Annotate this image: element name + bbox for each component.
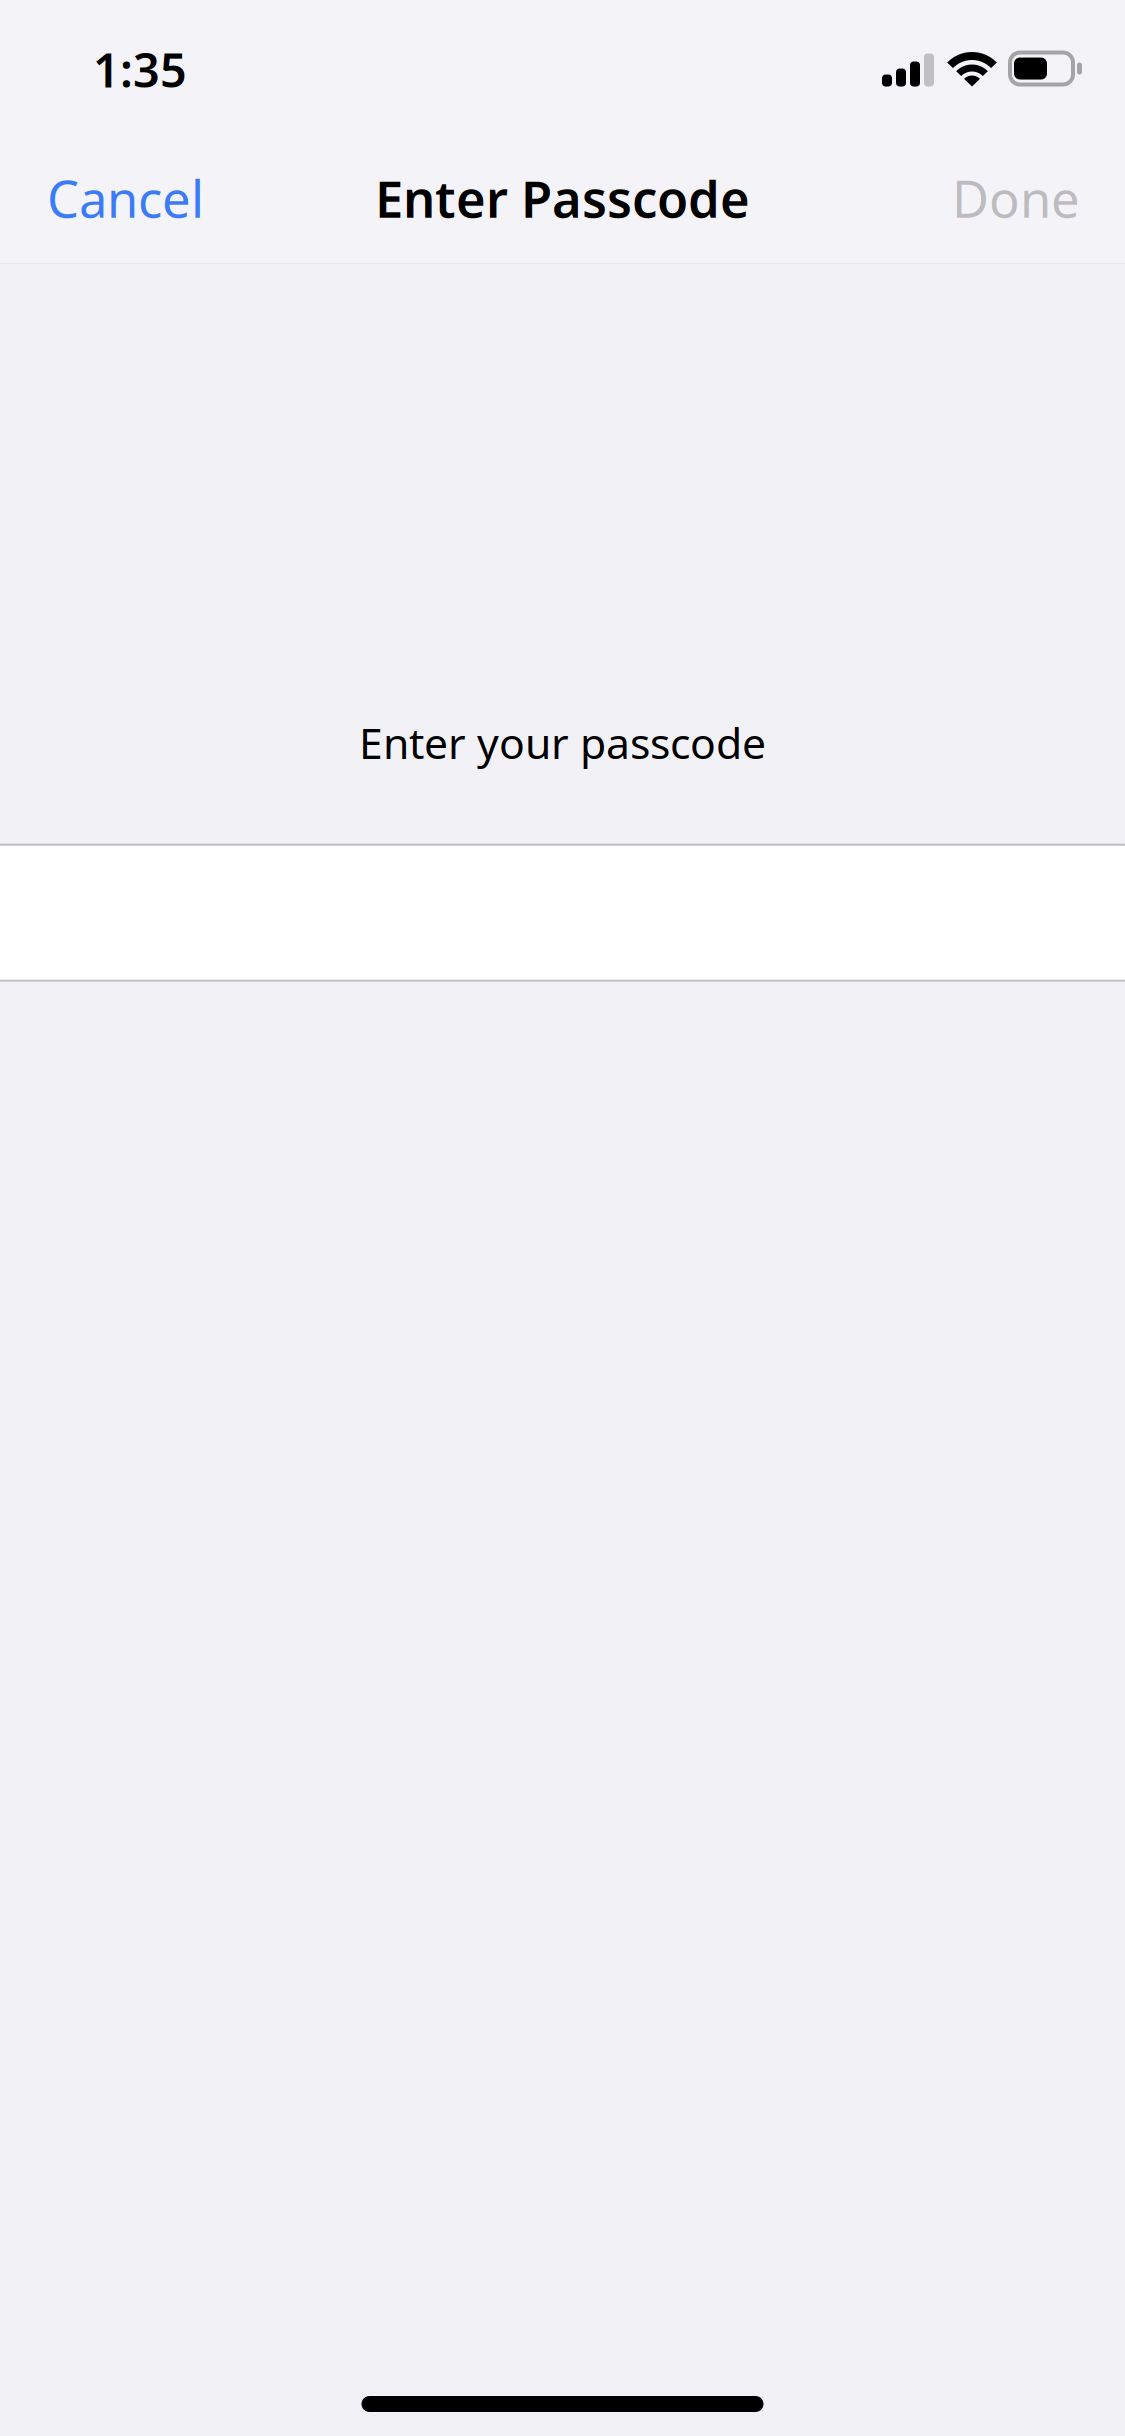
staticText: Enter your passcode [359, 714, 766, 771]
staticText: Done [952, 164, 1080, 232]
button[interactable]: Passcode [0, 844, 1125, 982]
button[interactable]: Done [907, 139, 1125, 257]
staticText: 1:35 [93, 38, 187, 100]
staticText: Cancel [47, 164, 204, 232]
button[interactable]: Cancel [0, 139, 251, 257]
staticText: Enter Passcode [375, 164, 750, 232]
